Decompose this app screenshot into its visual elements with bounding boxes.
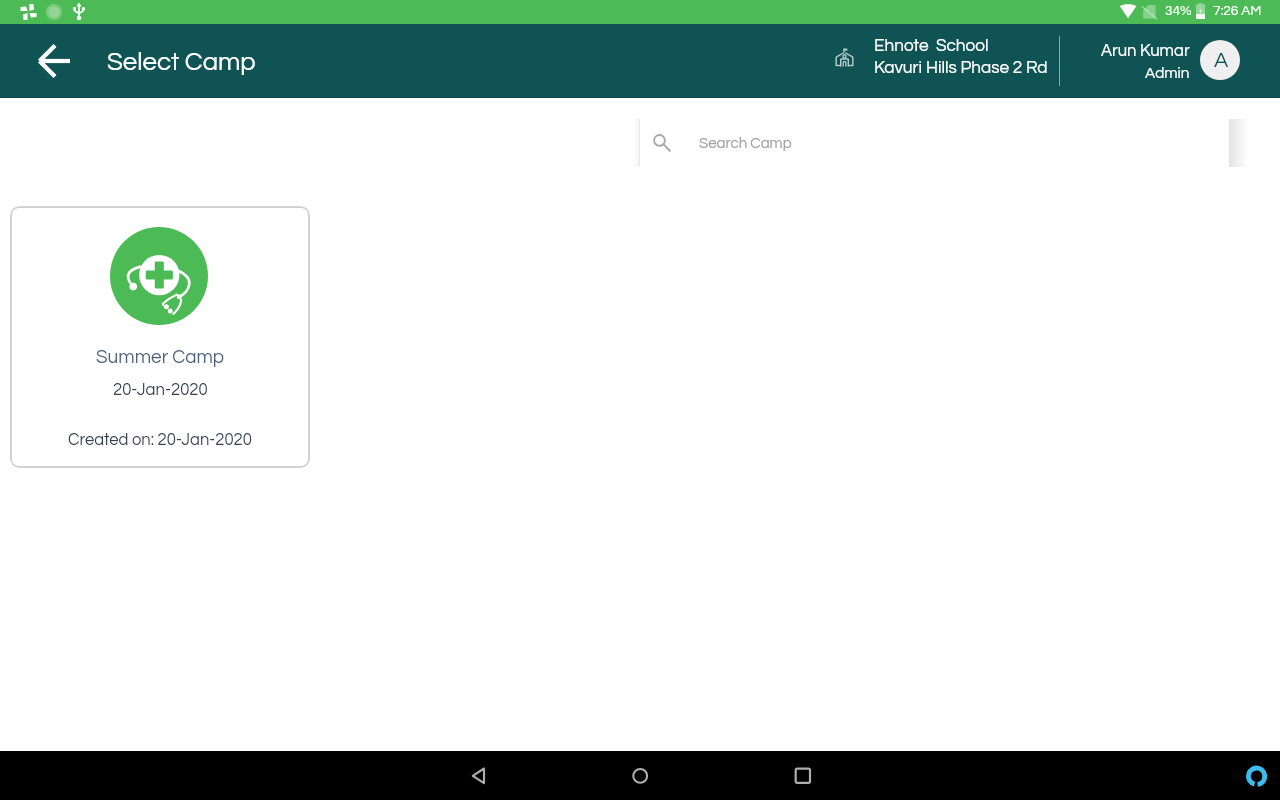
staticText: 34% xyxy=(1165,4,1192,18)
staticText: 7:26 AM xyxy=(1213,4,1262,18)
button[interactable]: Home xyxy=(610,751,670,800)
staticText: Ehnote School xyxy=(874,37,989,55)
staticText: Search Camp xyxy=(699,136,792,151)
staticText: Summer Camp xyxy=(96,348,225,367)
button[interactable]: Search Camp xyxy=(640,119,1229,167)
staticText: Created on: 20-Jan-2020 xyxy=(68,431,252,448)
button[interactable]: Summer Camp xyxy=(10,206,310,468)
button[interactable]: Back xyxy=(30,37,78,85)
button[interactable]: Profile xyxy=(1200,40,1240,80)
staticText: Arun Kumar xyxy=(1101,42,1190,59)
button[interactable]: Assistant xyxy=(1236,751,1278,800)
button[interactable]: Recent apps xyxy=(772,751,832,800)
staticText: A xyxy=(1214,49,1229,71)
staticText: Kavuri Hills Phase 2 Rd xyxy=(874,59,1048,77)
staticText: 20-Jan-2020 xyxy=(113,381,208,398)
staticText: Select Camp xyxy=(107,49,256,76)
button[interactable]: Back xyxy=(446,751,506,800)
staticText: Admin xyxy=(1145,65,1190,81)
